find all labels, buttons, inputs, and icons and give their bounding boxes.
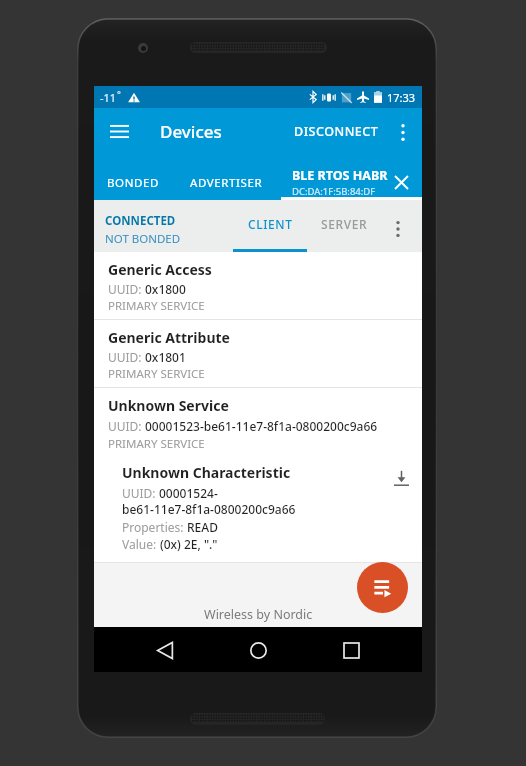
staticText: DC:DA:1F:5B:84:DF: [292, 185, 376, 198]
staticText: PRIMARY SERVICE: [108, 436, 205, 452]
staticText: Properties:: [122, 519, 187, 535]
staticText: be61-11e7-8f1a-0800200c9a66: [122, 501, 296, 517]
staticText: PRIMARY SERVICE: [108, 298, 205, 314]
button[interactable]: Home: [236, 628, 280, 672]
staticText: ADVERTISER: [190, 175, 263, 191]
button[interactable]: Back: [143, 628, 187, 672]
button[interactable]: Playlist actions: [357, 562, 408, 613]
staticText: BLE RTOS HABR: [292, 167, 388, 184]
staticText: UUID:: [108, 418, 145, 434]
staticText: (0x) 2E, ".": [160, 536, 218, 552]
staticText: Value:: [122, 536, 160, 552]
button[interactable]: Unknown Service: [94, 388, 422, 458]
staticText: 17:33: [387, 90, 416, 105]
staticText: SERVER: [321, 216, 368, 232]
button[interactable]: Unknown Characteristic: [94, 458, 422, 562]
button[interactable]: DISCONNECT: [289, 113, 384, 150]
staticText: CLIENT: [248, 216, 293, 232]
staticText: UUID:: [108, 281, 145, 297]
staticText: Wireless by Nordic: [204, 606, 313, 623]
button[interactable]: More options: [384, 113, 422, 151]
button[interactable]: Recents: [329, 628, 373, 672]
button[interactable]: BONDED: [94, 155, 172, 200]
staticText: Devices: [160, 120, 222, 143]
staticText: 0x1801: [145, 349, 186, 365]
button[interactable]: Read: [388, 465, 414, 491]
button[interactable]: BLE RTOS HABR: [281, 155, 422, 200]
staticText: UUID:: [108, 349, 145, 365]
staticText: Unknown Characteristic: [122, 463, 291, 482]
staticText: -11: [100, 90, 117, 105]
staticText: 00001524-: [159, 485, 218, 501]
button[interactable]: Menu: [94, 108, 144, 155]
staticText: NOT BONDED: [105, 231, 181, 247]
button[interactable]: More options: [381, 200, 422, 252]
button[interactable]: ADVERTISER: [172, 155, 281, 200]
staticText: Generic Access: [108, 260, 212, 279]
staticText: 0x1800: [145, 281, 186, 297]
staticText: Generic Attribute: [108, 328, 230, 347]
button[interactable]: SERVER: [307, 200, 381, 252]
staticText: READ: [187, 519, 218, 535]
staticText: °: [117, 88, 121, 100]
button[interactable]: CLIENT: [233, 200, 307, 252]
staticText: PRIMARY SERVICE: [108, 366, 205, 382]
staticText: 00001523-be61-11e7-8f1a-0800200c9a66: [145, 418, 378, 434]
button[interactable]: Generic Attribute: [94, 320, 422, 387]
button[interactable]: Generic Access: [94, 252, 422, 319]
staticText: BONDED: [107, 175, 159, 191]
staticText: CONNECTED: [105, 213, 176, 229]
staticText: UUID:: [122, 485, 159, 501]
staticText: Unknown Service: [108, 396, 229, 415]
staticText: DISCONNECT: [294, 123, 379, 140]
